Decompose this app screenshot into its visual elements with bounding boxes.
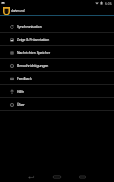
button[interactable]: Zeige & Präsentation — [0, 33, 114, 46]
staticText: dortmund — [11, 9, 25, 13]
staticText: Nachrichten Speicher — [17, 50, 51, 54]
button[interactable]: Benachrichtigungen — [0, 59, 114, 72]
staticText: Benachrichtigungen — [17, 63, 49, 67]
button[interactable]: Home — [49, 171, 65, 182]
button[interactable]: Hilfe — [0, 85, 114, 98]
staticText: 6:06 — [105, 1, 112, 6]
button[interactable]: Recent apps — [74, 171, 90, 182]
button[interactable]: Feedback — [0, 72, 114, 85]
button[interactable]: Synchronisation — [0, 20, 114, 33]
staticText: Über — [17, 102, 25, 106]
button[interactable]: Back — [23, 171, 39, 182]
staticText: Zeige & Präsentation — [17, 37, 50, 41]
button[interactable]: Über — [0, 98, 114, 111]
staticText: Feedback — [17, 76, 32, 80]
staticText: Hilfe — [17, 89, 25, 93]
staticText: Synchronisation — [17, 24, 42, 28]
button[interactable]: Nachrichten Speicher — [0, 46, 114, 59]
